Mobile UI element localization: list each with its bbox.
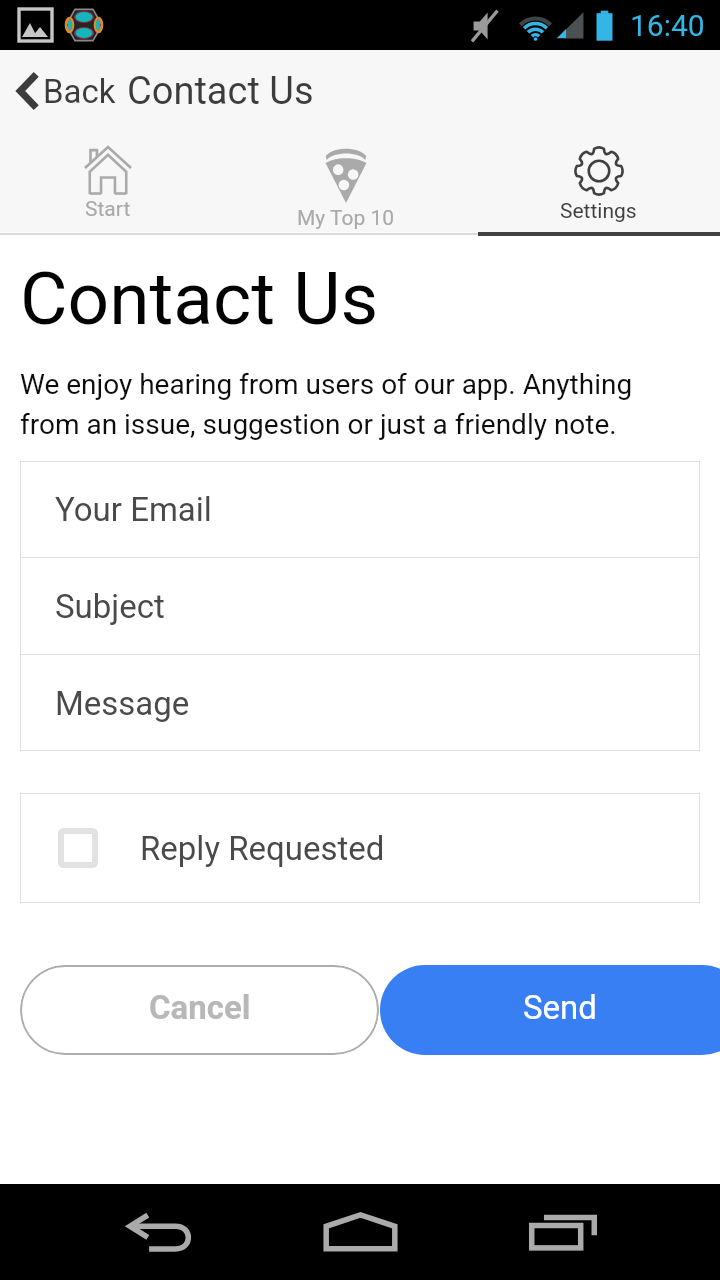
staticText: We enjoy hearing from users of our app. … — [20, 368, 633, 441]
button[interactable]: My Top 10 — [215, 131, 477, 232]
staticText: Reply Requested — [140, 829, 385, 868]
button[interactable]: Message — [20, 655, 700, 751]
staticText: My Top 10 — [297, 206, 395, 231]
staticText: Contact Us — [127, 69, 314, 114]
staticText: Settings — [560, 199, 637, 224]
button[interactable]: Subject — [20, 558, 700, 654]
button[interactable]: Your Email — [20, 461, 700, 557]
button[interactable]: Cancel — [20, 965, 379, 1055]
staticText: Contact Us — [20, 256, 379, 342]
staticText: Subject — [55, 587, 165, 626]
button[interactable]: Send — [380, 965, 720, 1055]
staticText: Message — [55, 684, 190, 723]
button[interactable]: Start — [0, 131, 215, 232]
staticText: Send — [523, 988, 597, 1027]
button[interactable]: Back — [110, 1184, 211, 1280]
button[interactable]: Back — [0, 68, 320, 114]
staticText: Your Email — [55, 490, 212, 529]
button[interactable]: Settings — [477, 131, 720, 232]
staticText: Cancel — [149, 988, 251, 1027]
button[interactable]: Reply Requested — [20, 793, 700, 903]
button[interactable]: Home — [324, 1184, 397, 1280]
button[interactable]: Recent apps — [512, 1184, 613, 1280]
staticText: Back — [43, 72, 116, 111]
staticText: 16:40 — [630, 8, 705, 43]
staticText: Start — [85, 197, 131, 222]
